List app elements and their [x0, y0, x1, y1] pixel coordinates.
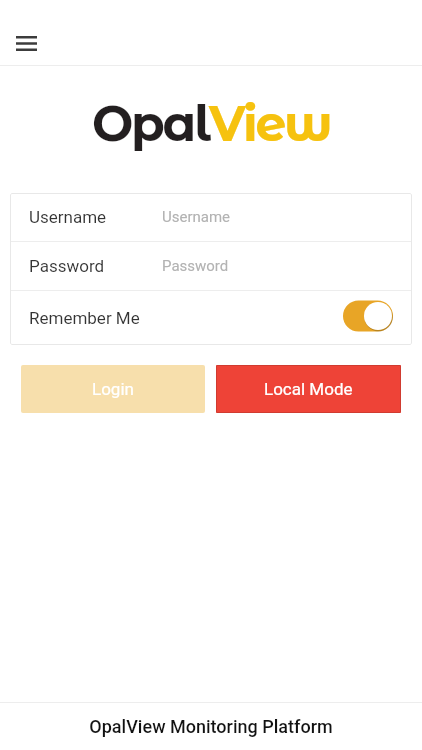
staticText: OpalView Monitoring Platform	[89, 716, 333, 737]
button[interactable]: Password	[10, 242, 412, 290]
button[interactable]: Open navigation menu	[5, 20, 48, 66]
staticText: View	[209, 94, 331, 154]
button[interactable]: Remember Me	[10, 291, 412, 345]
button[interactable]: Local Mode	[216, 365, 401, 413]
staticText: Username	[29, 207, 107, 227]
staticText: Opal	[92, 94, 209, 154]
staticText: Password	[162, 257, 229, 275]
staticText: Remember Me	[29, 308, 140, 328]
staticText: Login	[92, 379, 134, 399]
staticText: Local Mode	[264, 379, 353, 399]
staticText: Username	[162, 208, 231, 226]
button[interactable]: Login	[21, 365, 205, 413]
staticText: Password	[29, 256, 105, 276]
button[interactable]: Username	[10, 193, 412, 241]
